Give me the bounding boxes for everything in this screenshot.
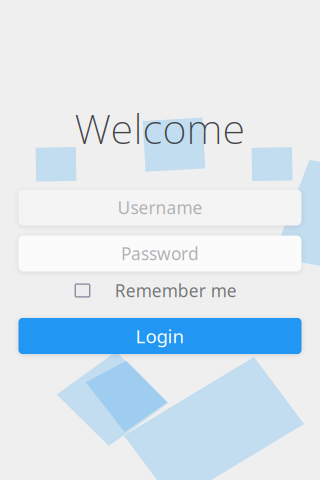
staticText: Welcome xyxy=(74,101,245,155)
button[interactable]: Username xyxy=(18,189,301,225)
button[interactable]: Password xyxy=(18,235,301,271)
staticText: Username xyxy=(117,196,202,219)
staticText: Password xyxy=(121,242,199,265)
button[interactable]: Remember me xyxy=(75,279,237,301)
staticText: Login xyxy=(135,324,184,348)
staticText: Remember me xyxy=(115,279,237,302)
button[interactable]: Login xyxy=(18,318,301,354)
